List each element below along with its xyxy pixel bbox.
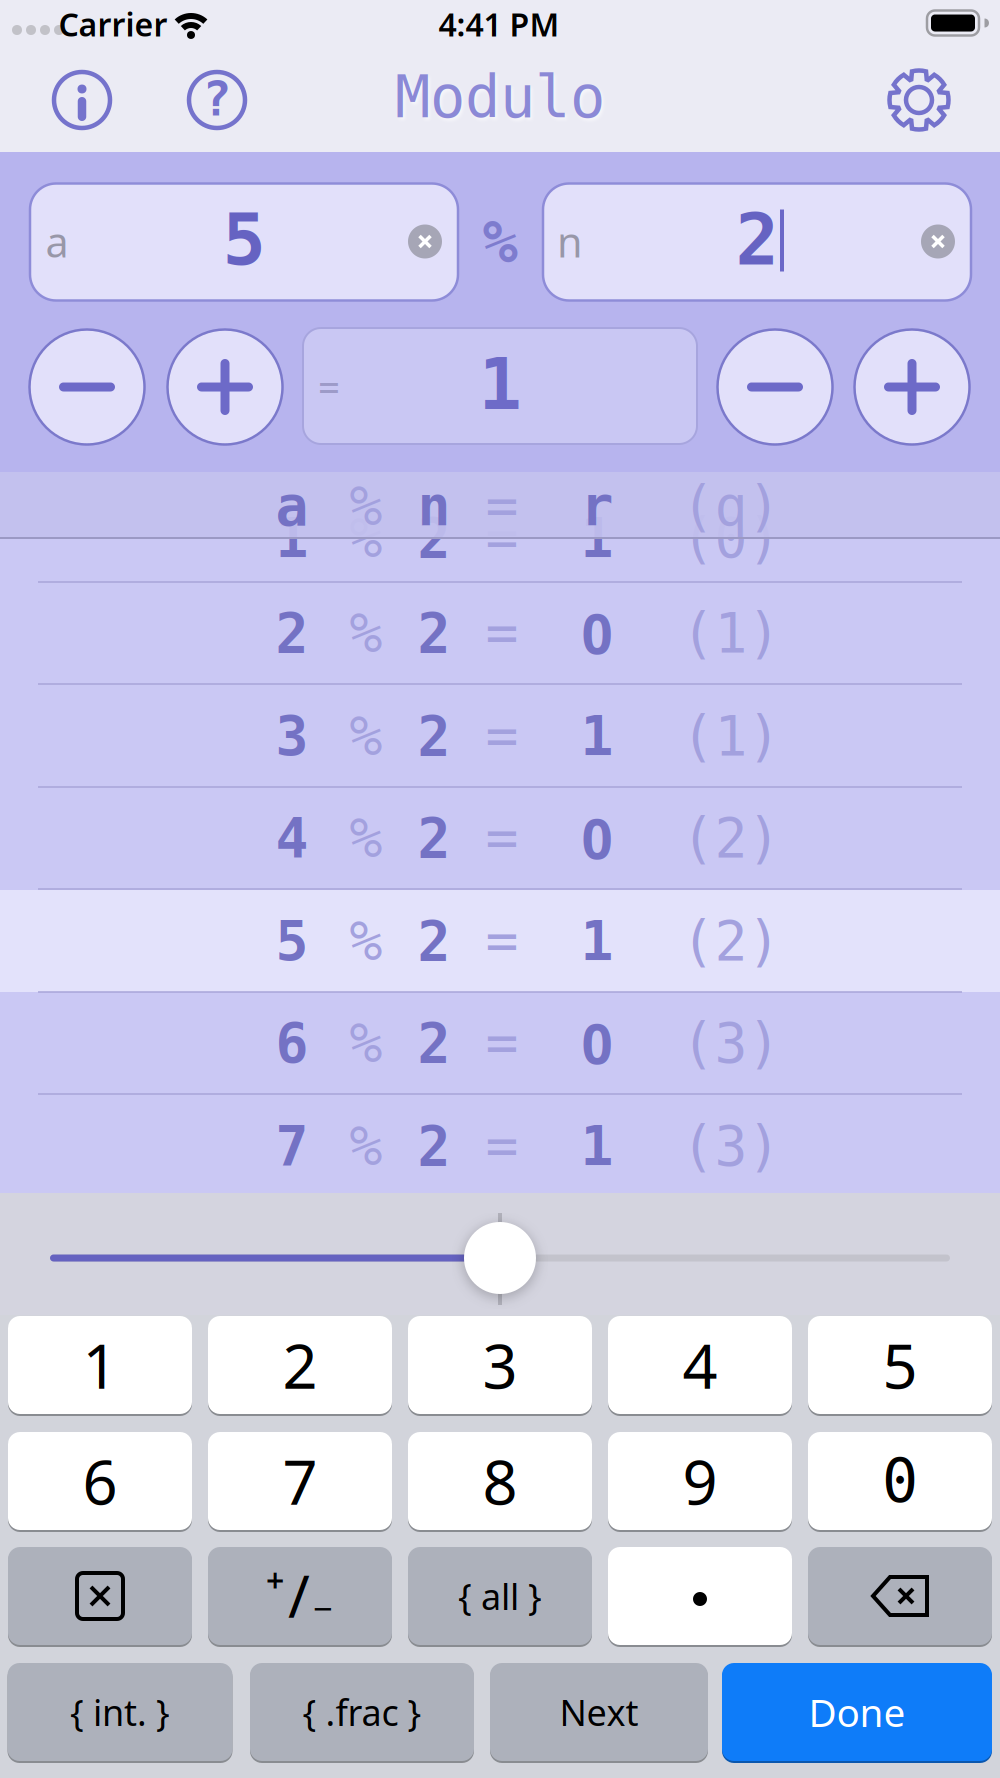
- staticText: 7: [282, 1440, 317, 1522]
- staticText: %: [349, 705, 382, 767]
- button[interactable]: [167, 329, 282, 444]
- staticText: { all }: [458, 1572, 542, 1620]
- staticText: 1: [478, 343, 521, 425]
- button[interactable]: [921, 224, 955, 258]
- staticText: (1): [681, 602, 780, 664]
- button[interactable]: n: [543, 183, 971, 300]
- staticText: 2: [417, 910, 450, 972]
- button[interactable]: +: [208, 1546, 392, 1646]
- staticText: 3: [275, 705, 308, 767]
- staticText: 4:41 PM: [438, 3, 559, 45]
- staticText: 5: [275, 910, 308, 972]
- staticText: 8: [482, 1440, 517, 1522]
- staticText: =: [485, 705, 518, 767]
- button[interactable]: Next: [490, 1662, 708, 1762]
- button[interactable]: a: [0, 455, 1000, 557]
- button[interactable]: [854, 329, 969, 444]
- staticText: { .frac }: [302, 1688, 421, 1736]
- staticText: 1: [580, 507, 613, 569]
- button[interactable]: 8: [408, 1431, 592, 1531]
- button[interactable]: 6: [8, 1431, 192, 1531]
- staticText: n: [417, 475, 450, 537]
- staticText: (3): [681, 1012, 780, 1074]
- button[interactable]: 6: [0, 992, 1000, 1094]
- button[interactable]: [808, 1546, 992, 1646]
- button[interactable]: 4: [0, 787, 1000, 889]
- staticText: =: [485, 602, 518, 664]
- button[interactable]: 0: [808, 1431, 992, 1531]
- button[interactable]: 9: [608, 1431, 792, 1531]
- staticText: 1: [275, 507, 308, 569]
- staticText: 9: [682, 1440, 717, 1522]
- staticText: (2): [681, 807, 780, 869]
- staticText: =: [485, 1012, 518, 1074]
- button[interactable]: { all }: [408, 1546, 592, 1646]
- staticText: a: [45, 214, 68, 269]
- staticText: %: [349, 1012, 382, 1074]
- staticText: 2: [275, 602, 308, 664]
- staticText: 1: [82, 1324, 117, 1406]
- button[interactable]: 3: [408, 1315, 592, 1415]
- staticText: 5: [882, 1324, 917, 1406]
- button[interactable]: a: [30, 183, 458, 300]
- button[interactable]: 4: [608, 1315, 792, 1415]
- staticText: %: [349, 910, 382, 972]
- button[interactable]: 1: [8, 1315, 192, 1415]
- button[interactable]: Done: [722, 1662, 992, 1762]
- staticText: 0: [882, 1447, 918, 1515]
- staticText: Modulo: [395, 64, 605, 130]
- button[interactable]: [54, 72, 110, 128]
- staticText: =: [485, 910, 518, 972]
- staticText: Next: [559, 1688, 638, 1736]
- button[interactable]: { .frac }: [250, 1662, 474, 1762]
- button[interactable]: [408, 224, 442, 258]
- button[interactable]: 5: [0, 890, 1000, 992]
- staticText: 7: [275, 1115, 308, 1177]
- staticText: /: [288, 1556, 310, 1634]
- staticText: 2: [282, 1324, 317, 1406]
- staticText: %: [349, 602, 382, 664]
- staticText: r: [580, 475, 613, 537]
- button[interactable]: 3: [0, 685, 1000, 787]
- staticText: =: [318, 367, 339, 407]
- staticText: 2: [417, 807, 450, 869]
- button[interactable]: [29, 329, 144, 444]
- button[interactable]: 5: [808, 1315, 992, 1415]
- staticText: =: [485, 475, 518, 537]
- staticText: 5: [222, 199, 265, 280]
- button[interactable]: ?: [189, 72, 245, 128]
- staticText: 2: [417, 602, 450, 664]
- button[interactable]: [717, 329, 832, 444]
- staticText: (2): [681, 910, 780, 972]
- staticText: 6: [275, 1012, 308, 1074]
- staticText: %: [349, 807, 382, 869]
- staticText: %: [349, 1115, 382, 1177]
- staticText: 0: [581, 1007, 612, 1079]
- staticText: 3: [482, 1324, 517, 1406]
- button[interactable]: [608, 1546, 792, 1646]
- button[interactable]: [8, 1546, 192, 1646]
- staticText: −: [313, 1585, 333, 1631]
- staticText: 1: [580, 705, 613, 767]
- button[interactable]: 7: [208, 1431, 392, 1531]
- button[interactable]: [887, 68, 951, 132]
- staticText: ?: [202, 72, 231, 126]
- staticText: 2: [417, 507, 450, 569]
- button[interactable]: 7: [0, 1095, 1000, 1197]
- staticText: 1: [580, 910, 613, 972]
- staticText: %: [349, 507, 382, 569]
- staticText: %: [349, 475, 382, 537]
- staticText: 0: [581, 802, 612, 874]
- staticText: 2: [417, 1115, 450, 1177]
- staticText: (3): [681, 1115, 780, 1177]
- staticText: %: [482, 209, 517, 275]
- button[interactable]: { int. }: [7, 1662, 232, 1762]
- button[interactable]: [464, 1222, 536, 1294]
- staticText: 4: [682, 1324, 717, 1406]
- button[interactable]: 1: [0, 487, 1000, 589]
- staticText: =: [485, 507, 518, 569]
- button[interactable]: 2: [0, 582, 1000, 684]
- button[interactable]: 2: [208, 1315, 392, 1415]
- staticText: (1): [681, 705, 780, 767]
- staticText: +: [266, 1559, 284, 1601]
